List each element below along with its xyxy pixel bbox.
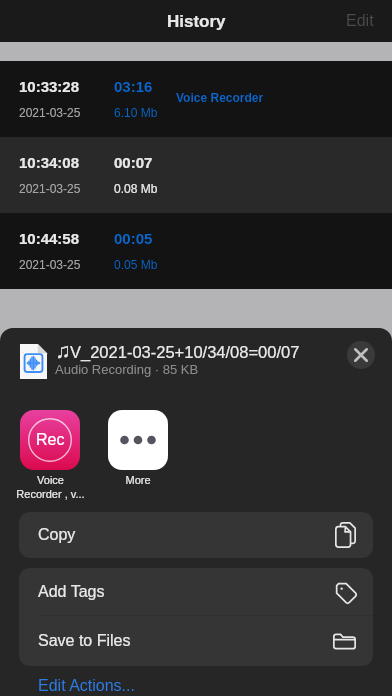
button[interactable]: 10:33:28 — [0, 61, 392, 137]
button[interactable]: 10:44:58 — [0, 213, 392, 289]
staticText: 00:05 — [114, 230, 153, 247]
staticText: 0.08 Mb — [114, 182, 158, 195]
staticText: 0.05 Mb — [114, 258, 158, 271]
staticText: Rec — [36, 431, 65, 449]
staticText: ♫ — [55, 339, 71, 362]
staticText: Edit Actions... — [38, 677, 135, 695]
staticText: V_2021-03-25+10/34/08=00/07 — [70, 343, 300, 361]
staticText: 10:34:08 — [19, 154, 80, 171]
button[interactable]: Edit Actions... — [38, 677, 135, 695]
staticText: More — [125, 474, 151, 486]
staticText: Add Tags — [38, 583, 105, 601]
staticText: Voice Recorder — [176, 91, 264, 104]
staticText: Save to Files — [38, 632, 131, 650]
button[interactable]: More — [108, 410, 168, 470]
button[interactable]: Edit — [328, 3, 392, 39]
staticText: 2021-03-25 — [19, 258, 81, 271]
staticText: 2021-03-25 — [19, 182, 81, 195]
staticText: Voice Recorder , v... — [16, 474, 85, 501]
button[interactable]: Rec — [20, 410, 80, 470]
staticText: History — [167, 12, 226, 31]
staticText: Copy — [38, 526, 76, 544]
button[interactable]: Save to Files — [19, 616, 373, 666]
button[interactable]: Copy — [19, 512, 373, 558]
button[interactable]: Close — [343, 337, 379, 373]
staticText: Edit — [346, 12, 374, 30]
staticText: 2021-03-25 — [19, 106, 81, 119]
staticText: Audio Recording · 85 KB — [55, 362, 199, 377]
staticText: 00:07 — [114, 154, 153, 171]
staticText: 03:16 — [114, 78, 153, 95]
staticText: 10:44:58 — [19, 230, 80, 247]
button[interactable]: 10:34:08 — [0, 137, 392, 213]
staticText: 6.10 Mb — [114, 106, 158, 119]
staticText: 10:33:28 — [19, 78, 80, 95]
button[interactable]: Add Tags — [19, 568, 373, 615]
